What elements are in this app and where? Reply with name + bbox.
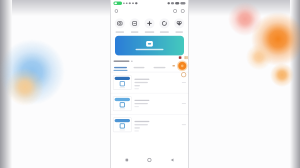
button[interactable] (115, 36, 184, 55)
button[interactable]: Menu (112, 7, 120, 15)
button[interactable]: Quick action (128, 18, 141, 33)
button[interactable]: Recent apps (122, 155, 132, 165)
button[interactable] (133, 67, 153, 68)
button[interactable]: Home (144, 154, 155, 166)
button[interactable]: Search (171, 7, 179, 15)
button[interactable]: Back (167, 154, 177, 165)
button[interactable] (113, 67, 133, 71)
button[interactable]: Quick action (173, 18, 185, 33)
button[interactable] (110, 114, 189, 135)
button[interactable] (110, 93, 189, 114)
button[interactable] (110, 72, 189, 93)
button[interactable]: Quick action (113, 18, 126, 33)
button[interactable]: Account (179, 7, 186, 15)
button[interactable] (153, 67, 173, 68)
button[interactable]: Quick action (143, 18, 156, 33)
button[interactable]: Quick action (158, 18, 171, 33)
